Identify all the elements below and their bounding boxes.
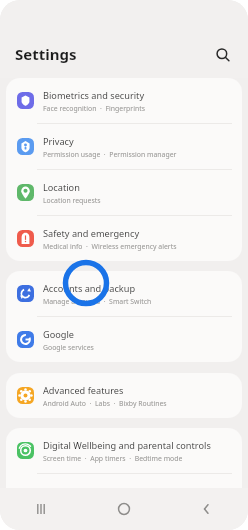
button[interactable]: Home <box>82 488 165 530</box>
button[interactable]: Recent apps <box>0 488 82 530</box>
button[interactable]: Digital Wellbeing and parental controls <box>6 428 242 473</box>
staticText: Medical info · Wireless emergency alerts <box>43 242 177 251</box>
button[interactable]: Search <box>206 38 240 72</box>
staticText: Advanced features <box>43 384 124 397</box>
staticText: Safety and emergency <box>43 227 140 240</box>
staticText: Face recognition · Fingerprints <box>43 104 145 113</box>
staticText: Google services <box>43 343 94 352</box>
button[interactable]: Safety and emergency <box>6 216 242 261</box>
button[interactable]: Biometrics and security <box>6 78 242 123</box>
button[interactable]: Google <box>6 317 242 362</box>
staticText: Manage accounts · Smart Switch <box>43 297 152 306</box>
staticText: Location <box>43 181 80 194</box>
staticText: Digital Wellbeing and parental controls <box>43 439 211 452</box>
button[interactable]: Advanced features <box>6 373 242 418</box>
staticText: Location requests <box>43 196 101 205</box>
button[interactable]: Accounts and backup <box>6 271 242 316</box>
staticText: Battery and device care <box>43 485 144 498</box>
staticText: Accounts and backup <box>43 282 136 295</box>
staticText: Privacy <box>43 135 74 148</box>
button[interactable]: Battery and device care <box>6 474 242 519</box>
button[interactable]: Location <box>6 170 242 215</box>
staticText: Settings <box>15 44 77 64</box>
button[interactable]: Privacy <box>6 124 242 169</box>
staticText: Google <box>43 328 75 341</box>
button[interactable]: Back <box>165 488 248 530</box>
staticText: Permission usage · Permission manager <box>43 150 177 159</box>
staticText: Storage · Memory · Device protection <box>43 500 170 509</box>
staticText: Screen time · App timers · Bedtime mode <box>43 454 183 463</box>
staticText: Android Auto · Labs · Bixby Routines <box>43 399 167 408</box>
staticText: Biometrics and security <box>43 89 145 102</box>
